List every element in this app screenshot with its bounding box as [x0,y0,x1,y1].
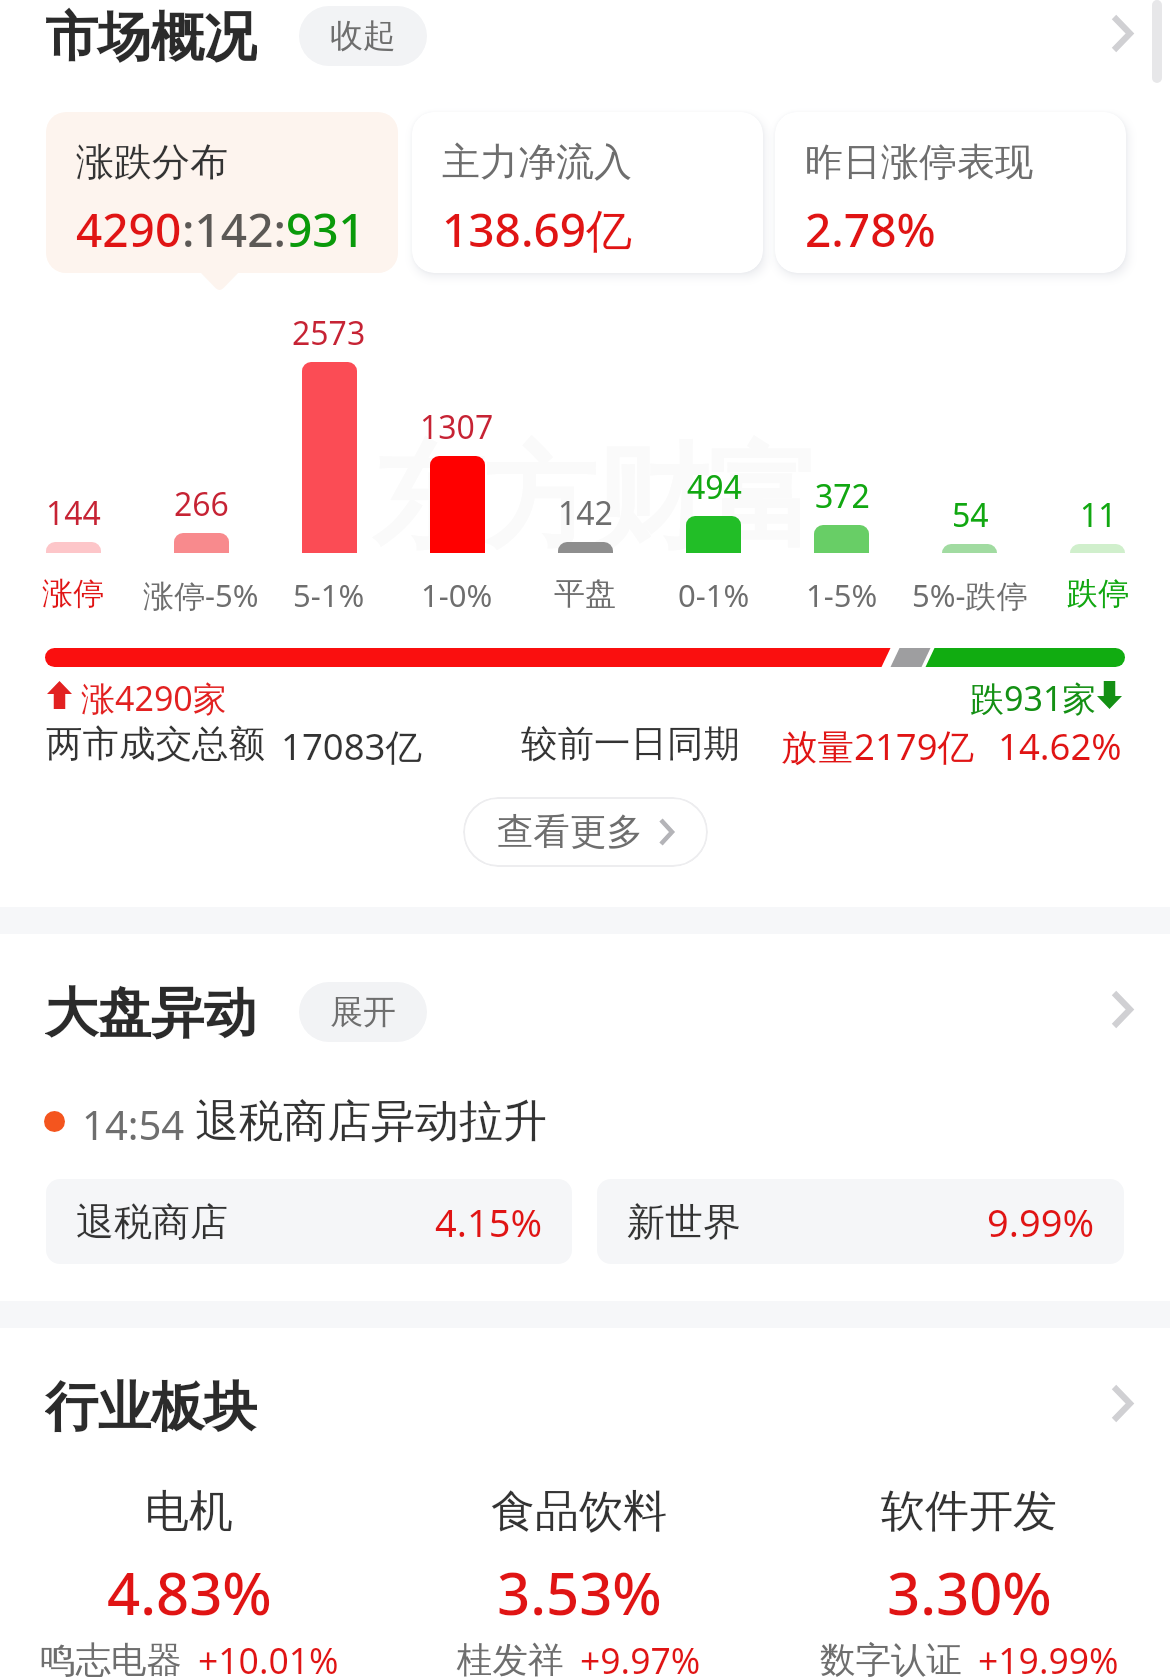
staticText: 桂发祥 [457,1638,564,1677]
staticText: 1-5% [806,574,878,616]
staticText: 食品饮料 [491,1484,667,1539]
staticText: 144 [46,491,101,535]
staticText: 软件开发 [881,1484,1057,1539]
staticText: 4290 [76,198,182,261]
button[interactable]: 展开 [299,982,427,1042]
button[interactable]: More [1082,4,1162,68]
staticText: 494 [687,465,742,509]
staticText: 退税商店异动拉升 [195,1094,547,1146]
staticText: 展开 [330,991,396,1033]
staticText: 3.53% [497,1553,662,1632]
button[interactable]: More [1082,980,1162,1044]
staticText: 主力净流入 [442,138,632,186]
staticText: 4.15% [435,1196,542,1248]
staticText: +10.01% [198,1636,339,1677]
staticText: 17083亿 [281,721,422,767]
staticText: 2573 [292,311,366,355]
staticText: 3.30% [887,1553,1052,1632]
staticText: 931 [286,198,365,261]
staticText: 跌931家 [970,675,1097,717]
staticText: 2.78% [805,198,936,261]
staticText: 5-1% [293,574,365,616]
button[interactable]: 电机 [0,1484,384,1677]
button[interactable]: 涨跌分布 [46,112,398,273]
staticText: 大盘异动 [45,980,257,1044]
staticText: 放量2179亿 [781,721,975,767]
staticText: 9.99% [987,1196,1094,1248]
staticText: +9.97% [580,1636,701,1677]
button[interactable]: 食品饮料 [384,1484,774,1677]
staticText: 1-0% [421,574,493,616]
button[interactable]: 查看更多 [463,797,708,867]
staticText: 较前一日同期 [521,721,740,767]
staticText: 涨4290家 [81,675,227,717]
staticText: 涨停-5% [143,574,259,616]
staticText: 跌停 [1067,574,1129,613]
staticText: 138.69亿 [442,198,633,261]
staticText: 新世界 [627,1198,741,1246]
staticText: 54 [952,493,989,537]
staticText: 14.62% [998,721,1122,767]
staticText: +19.99% [978,1636,1119,1677]
staticText: 东方财富 [372,428,820,569]
staticText: 平盘 [554,574,616,613]
button[interactable]: 大盘异动 [0,980,267,1044]
staticText: 4.83% [107,1553,272,1632]
button[interactable]: 市场概况 [0,4,267,68]
staticText: 266 [174,482,229,526]
button[interactable]: 软件开发 [774,1484,1164,1677]
staticText: 行业板块 [45,1374,257,1438]
staticText: 1307 [420,405,494,449]
button[interactable]: 退税商店 [46,1179,572,1264]
staticText: 0-1% [678,574,750,616]
staticText: 14:54 [82,1097,185,1149]
staticText: 退税商店 [76,1198,228,1246]
button[interactable]: 主力净流入 [412,112,763,273]
staticText: 涨停 [42,574,104,613]
staticText: :142: [182,198,286,261]
button[interactable]: 行业板块 [0,1374,267,1438]
staticText: 收起 [330,15,396,57]
staticText: 372 [815,474,870,518]
staticText: 查看更多 [497,809,643,855]
button[interactable]: More [1082,1374,1162,1438]
button[interactable]: 昨日涨停表现 [775,112,1126,273]
staticText: 两市成交总额 [46,721,265,767]
staticText: 5%-跌停 [912,574,1028,616]
button[interactable]: 新世界 [597,1179,1124,1264]
staticText: 142 [558,491,613,535]
staticText: 11 [1080,493,1117,537]
staticText: 电机 [145,1484,233,1539]
staticText: 涨跌分布 [76,138,228,186]
button[interactable]: 收起 [299,6,427,66]
staticText: 昨日涨停表现 [805,138,1033,186]
staticText: 市场概况 [45,4,257,68]
staticText: 数字认证 [820,1638,962,1677]
staticText: 鸣志电器 [40,1638,182,1677]
